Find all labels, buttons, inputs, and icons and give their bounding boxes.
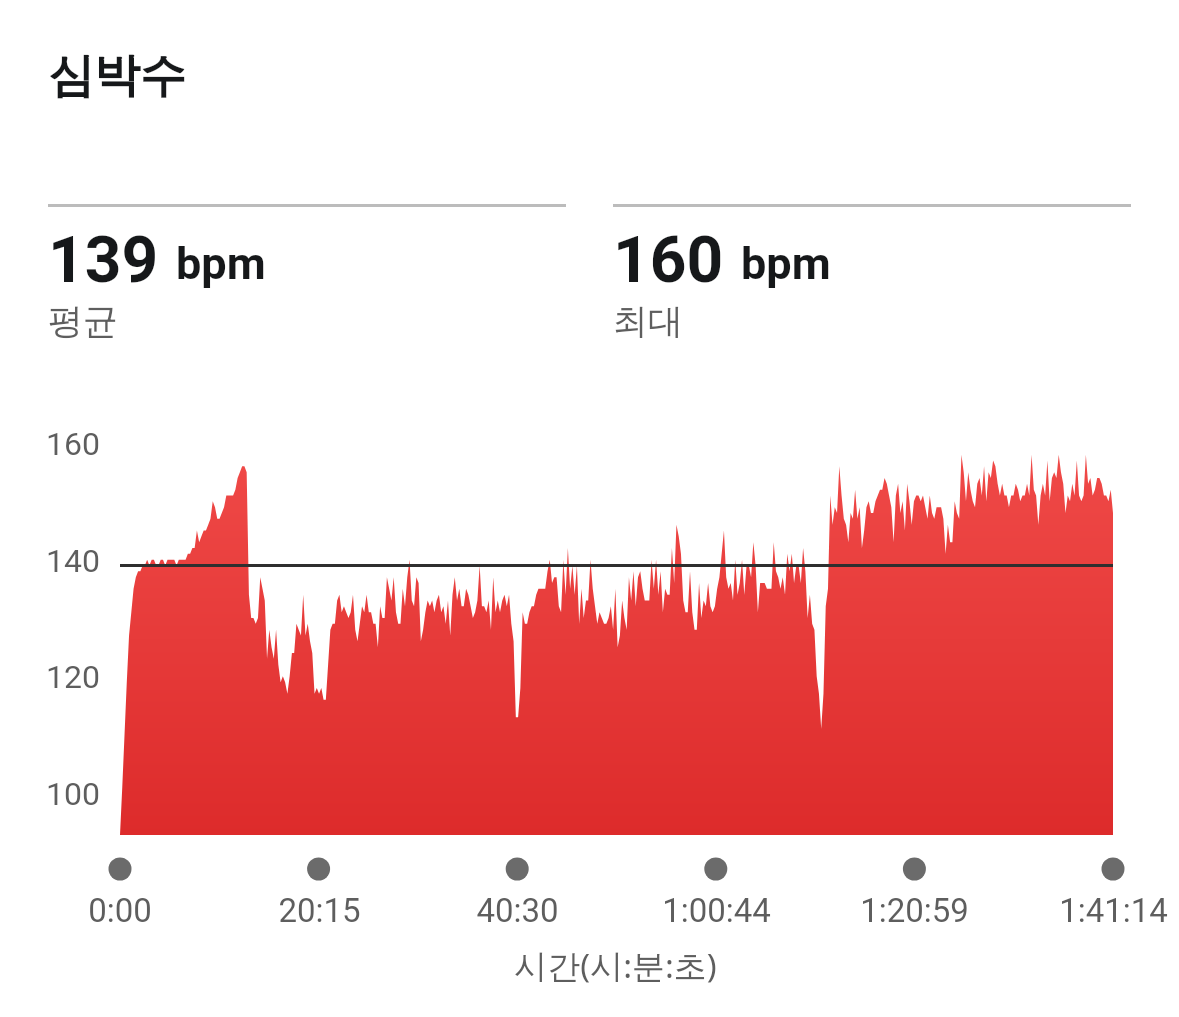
- staticText: 160: [613, 223, 724, 298]
- button[interactable]: 139: [48, 204, 566, 344]
- staticText: 1:41:14: [1059, 891, 1168, 930]
- other: Heart rate chart: [120, 443, 1113, 885]
- staticText: 40:30: [476, 891, 559, 930]
- staticText: 140: [46, 542, 100, 580]
- staticText: 139: [48, 223, 159, 298]
- staticText: 100: [46, 775, 100, 813]
- staticText: 심박수: [48, 47, 186, 105]
- staticText: 120: [46, 658, 100, 696]
- staticText: 1:00:44: [662, 891, 771, 930]
- staticText: 160: [46, 425, 100, 463]
- staticText: 시간(시:분:초): [514, 943, 717, 988]
- staticText: 20:15: [278, 891, 361, 930]
- staticText: bpm: [741, 237, 831, 290]
- staticText: bpm: [176, 237, 266, 290]
- staticText: 1:20:59: [860, 891, 969, 930]
- staticText: 0:00: [88, 891, 152, 930]
- button[interactable]: 심박수: [48, 47, 186, 105]
- button[interactable]: 160: [613, 204, 1131, 344]
- staticText: 평균: [48, 299, 118, 343]
- staticText: 최대: [613, 299, 683, 343]
